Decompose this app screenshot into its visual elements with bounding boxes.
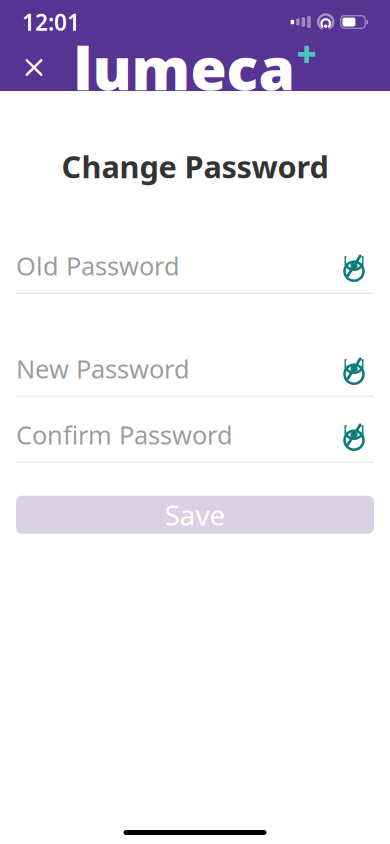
staticText: Change Password <box>61 146 328 187</box>
button[interactable]: Show new password <box>334 352 374 386</box>
staticText: Save <box>164 496 225 533</box>
staticText: 12:01 <box>22 7 80 37</box>
staticText: Old Password <box>16 249 180 282</box>
staticText: lumeca <box>73 28 295 106</box>
staticText: New Password <box>16 352 190 385</box>
button[interactable]: Show old password <box>334 249 374 283</box>
button[interactable]: Show confirm password <box>334 418 374 452</box>
button[interactable]: Close <box>12 45 56 89</box>
staticText: + <box>296 30 316 76</box>
staticText: Confirm Password <box>16 418 233 451</box>
button[interactable]: Save <box>16 496 374 534</box>
